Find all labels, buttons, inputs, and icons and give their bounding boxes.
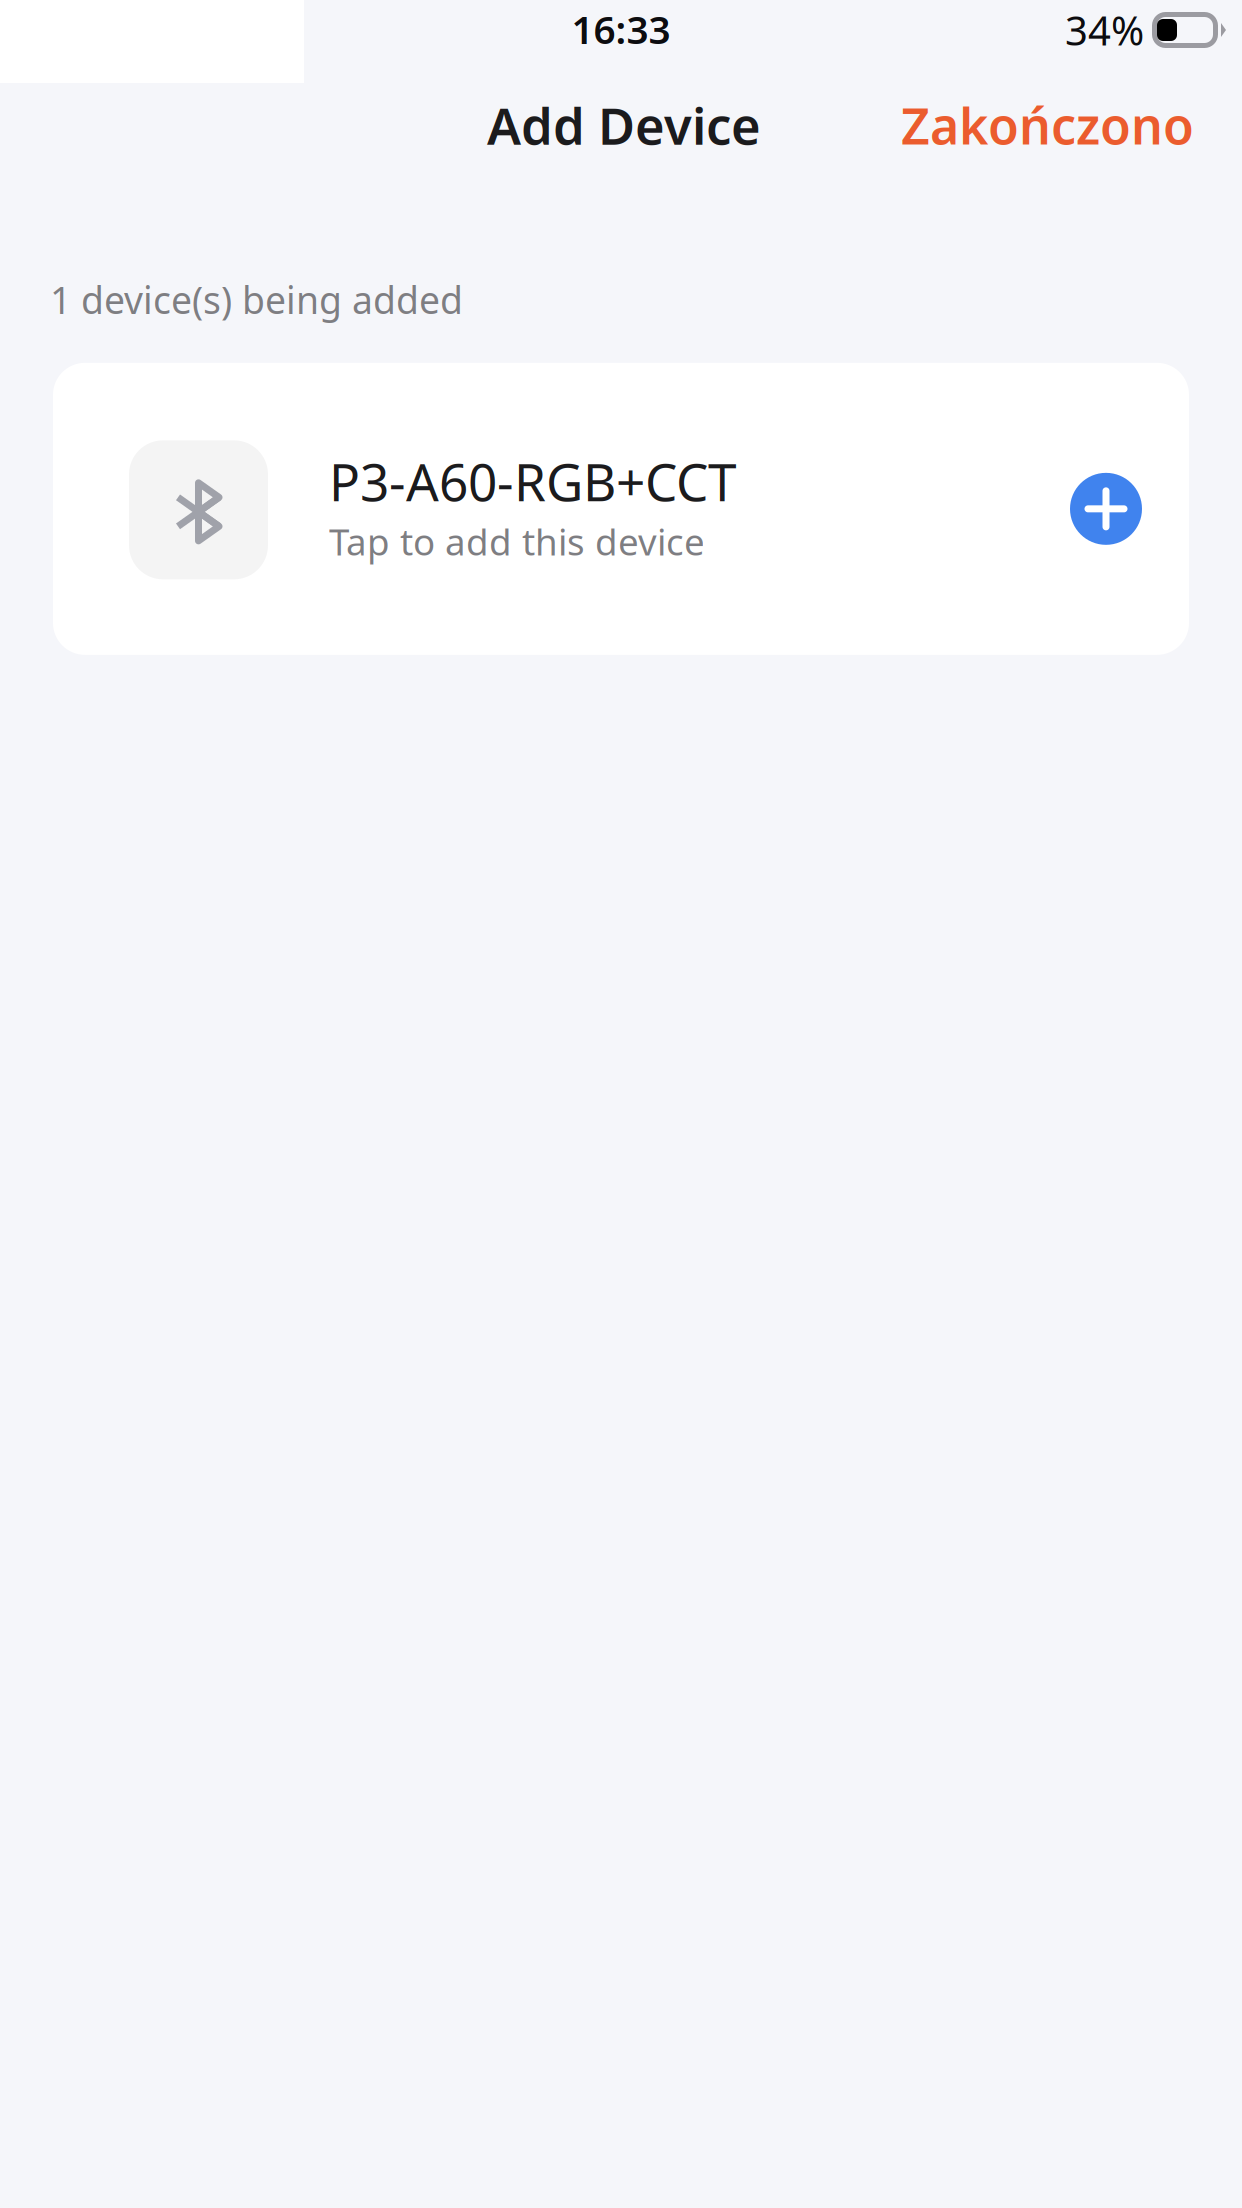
staticText: 34%: [1065, 3, 1144, 57]
staticText: 1 device(s) being added: [50, 274, 463, 325]
staticText: P3-A60-RGB+CCT: [329, 446, 737, 516]
staticText: 16:33: [571, 3, 670, 55]
staticText: Tap to add this device: [329, 516, 705, 566]
button[interactable]: Add this device: [1070, 473, 1142, 545]
button[interactable]: P3-A60-RGB+CCT: [53, 363, 1189, 655]
button[interactable]: Zakończono: [879, 77, 1242, 173]
staticText: Add Device: [487, 90, 761, 159]
staticText: Zakończono: [901, 91, 1194, 159]
